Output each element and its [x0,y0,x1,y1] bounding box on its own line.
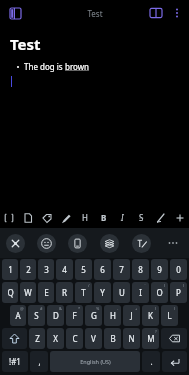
button[interactable]: Format clip [56,207,75,228]
button[interactable]: N [123,328,140,349]
staticText: D [53,310,59,321]
button[interactable]: K [142,305,159,326]
staticText: English (US) [80,358,111,365]
button[interactable]: Toggle sidebar [4,2,26,24]
button[interactable]: enter [162,351,187,372]
staticText: The dog is [24,61,65,72]
staticText: F [72,310,77,321]
staticText: ( [164,283,166,288]
staticText: P [176,287,181,298]
staticText: W [24,287,32,298]
button[interactable]: E [38,282,54,303]
button[interactable]: B [104,328,121,349]
button[interactable]: shift [2,328,27,349]
button[interactable]: 7 [113,259,130,280]
staticText: brown [65,61,89,72]
button[interactable]: H [104,305,121,326]
staticText: # [40,306,43,311]
staticText: Y [100,287,105,298]
button[interactable]: 0 [170,259,187,280]
staticText: L [167,310,172,321]
staticText: H [110,310,116,321]
staticText: 2 [26,264,31,275]
button[interactable]: emoji [31,228,62,258]
button[interactable]: translate [125,228,157,258]
staticText: / [88,283,90,288]
button[interactable]: Format B [94,207,113,228]
button[interactable]: 6 [94,259,111,280]
button[interactable]: More options [167,3,187,23]
staticText: * [78,306,81,311]
button[interactable]: P [170,282,187,303]
staticText: K [148,310,153,321]
button[interactable]: Y [94,282,111,303]
button[interactable]: 2 [20,259,36,280]
button[interactable]: Format S [132,207,151,228]
staticText: % [96,306,100,311]
button[interactable]: F [66,305,83,326]
button[interactable]: Format H [75,207,94,228]
button[interactable]: Format I [113,207,132,228]
staticText: 7 [119,264,124,275]
staticText: V [91,333,96,344]
button[interactable]: G [85,305,102,326]
staticText: ) [183,283,185,288]
button[interactable]: M [142,328,159,349]
staticText: C [72,333,78,344]
button[interactable]: V [85,328,102,349]
button[interactable]: sticker [0,228,31,258]
button[interactable]: 3 [38,259,54,280]
button[interactable]: O [151,282,168,303]
staticText: & [59,306,62,311]
button[interactable]: Reading mode [145,2,167,24]
staticText: ¨ [144,283,147,288]
button[interactable]: Q [2,282,18,303]
button[interactable]: 9 [151,259,168,280]
button[interactable]: Format page [18,207,37,228]
staticText: 6 [100,264,105,275]
button[interactable]: Format tag [37,207,56,228]
button[interactable]: layers [93,228,125,258]
button[interactable]: C [66,328,83,349]
button[interactable]: English (US) [50,351,140,372]
staticText: O [156,287,163,298]
staticText: ) [174,306,176,311]
button[interactable]: R [56,282,73,303]
staticText: ? [155,329,157,334]
staticText: G [91,310,97,321]
button[interactable]: J [123,305,140,326]
button[interactable]: Format pen [151,207,170,228]
staticText: Test [10,34,41,54]
button[interactable]: D [47,305,64,326]
button[interactable]: L [161,305,178,326]
button[interactable]: clipboard [62,228,93,258]
button[interactable]: U [113,282,130,303]
button[interactable]: Format brackets [0,207,18,228]
staticText: R [62,287,67,298]
button[interactable]: Z [29,328,45,349]
button[interactable]: . [142,351,160,372]
button[interactable]: W [20,282,36,303]
button[interactable]: 1 [2,259,18,280]
button[interactable]: backspace [161,328,187,349]
button[interactable]: , [30,351,48,372]
button[interactable]: X [47,328,64,349]
button[interactable]: I [132,282,149,303]
button[interactable]: A [10,305,26,326]
staticText: ( [155,306,157,311]
button[interactable]: 8 [132,259,149,280]
staticText: T [81,287,86,298]
button[interactable]: T [75,282,92,303]
staticText: 8 [138,264,143,275]
staticText: S [34,310,39,321]
button[interactable]: more [157,228,189,258]
button[interactable]: Format plus [170,207,189,228]
button[interactable]: 4 [56,259,73,280]
button[interactable]: !#1 [2,351,28,372]
staticText: H [82,212,88,223]
staticText: B [101,212,107,223]
button[interactable]: S [28,305,45,326]
staticText: 3 [44,264,49,275]
button[interactable]: 5 [75,259,92,280]
staticText: Test [87,8,103,19]
